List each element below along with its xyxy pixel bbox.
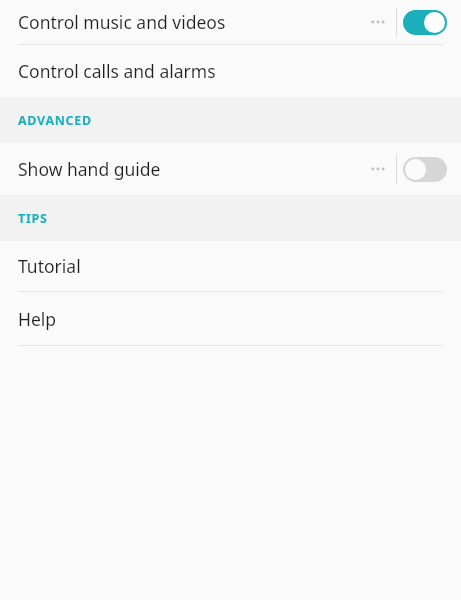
staticText: Help — [18, 307, 461, 331]
staticText: TIPS — [18, 210, 48, 227]
staticText: Control music and videos — [18, 10, 366, 34]
button[interactable]: Help — [0, 292, 461, 345]
button[interactable]: Tutorial — [0, 241, 461, 291]
staticText: Tutorial — [18, 254, 461, 278]
staticText: Control calls and alarms — [18, 59, 461, 83]
button[interactable]: More options — [366, 14, 390, 30]
button[interactable]: Show hand guide — [0, 143, 461, 195]
button[interactable]: Control calls and alarms — [0, 45, 461, 97]
button[interactable]: Toggle on — [403, 10, 447, 35]
button[interactable]: Control music and videos — [0, 0, 461, 44]
staticText: ADVANCED — [18, 112, 92, 129]
button[interactable]: More options — [366, 161, 390, 177]
button[interactable]: Toggle off — [403, 157, 447, 182]
staticText: Show hand guide — [18, 157, 366, 181]
